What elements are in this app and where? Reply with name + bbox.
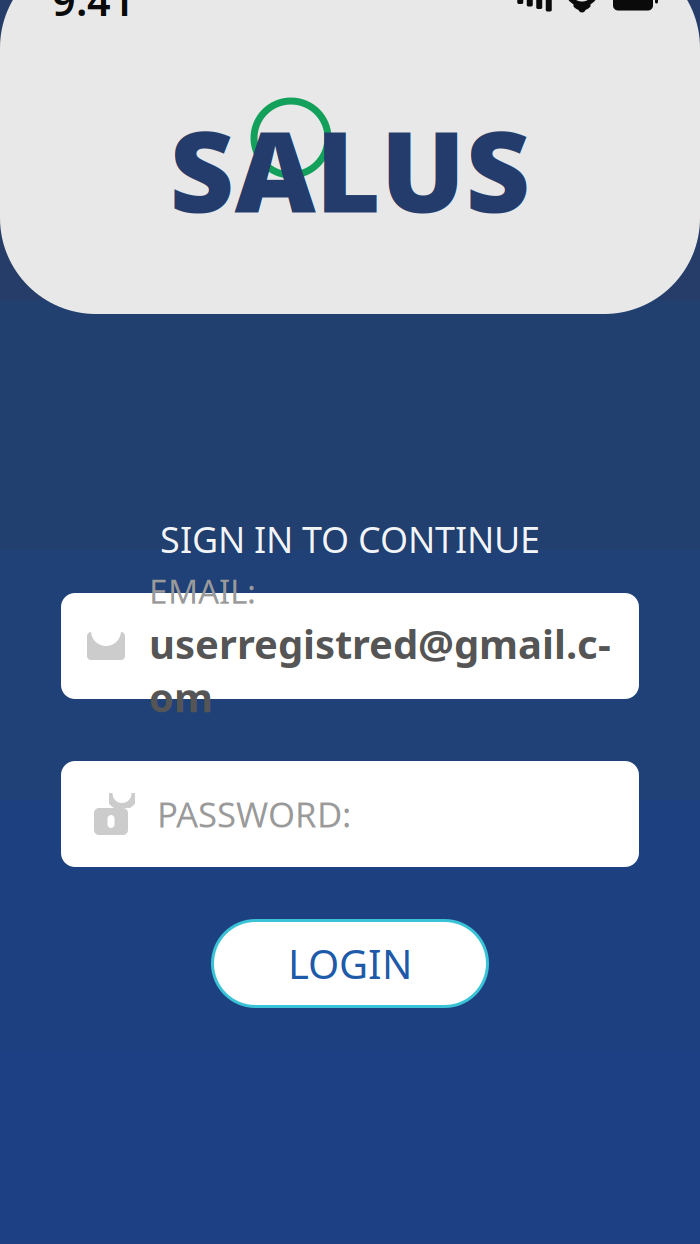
staticText: S	[169, 95, 234, 243]
staticText: A	[234, 95, 315, 243]
staticText: PASSWORD:	[157, 791, 351, 837]
staticText: S	[465, 95, 530, 243]
staticText: 9:41	[52, 0, 135, 27]
staticText: userregistred@gmail.com	[149, 617, 611, 723]
button[interactable]: LOGIN	[211, 919, 489, 1008]
staticText: U	[380, 95, 465, 243]
staticText: L	[315, 95, 380, 243]
staticText: LOGIN	[288, 937, 412, 990]
button[interactable]: PASSWORD:	[61, 761, 639, 867]
button[interactable]: EMAIL:	[61, 593, 639, 699]
staticText: SIGN IN TO CONTINUE	[160, 515, 540, 563]
staticText: EMAIL:	[149, 569, 256, 613]
